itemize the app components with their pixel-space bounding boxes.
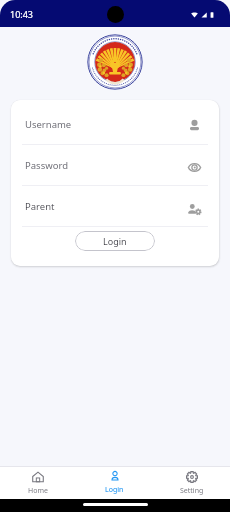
staticText: Username <box>25 118 72 131</box>
button[interactable]: Username <box>11 104 219 144</box>
button[interactable]: Parent <box>11 186 219 226</box>
button[interactable]: Login <box>75 231 155 251</box>
button[interactable]: Setting <box>153 467 230 499</box>
staticText: Login <box>103 235 127 247</box>
staticText: Parent <box>25 200 55 213</box>
button[interactable]: Home <box>0 467 76 499</box>
staticText: Login <box>105 485 124 495</box>
staticText: Home <box>28 486 48 496</box>
button[interactable]: Password <box>11 145 219 185</box>
staticText: Setting <box>180 486 204 496</box>
staticText: Password <box>25 159 68 172</box>
button[interactable]: Login <box>76 467 153 499</box>
staticText: 10:43 <box>10 8 34 20</box>
